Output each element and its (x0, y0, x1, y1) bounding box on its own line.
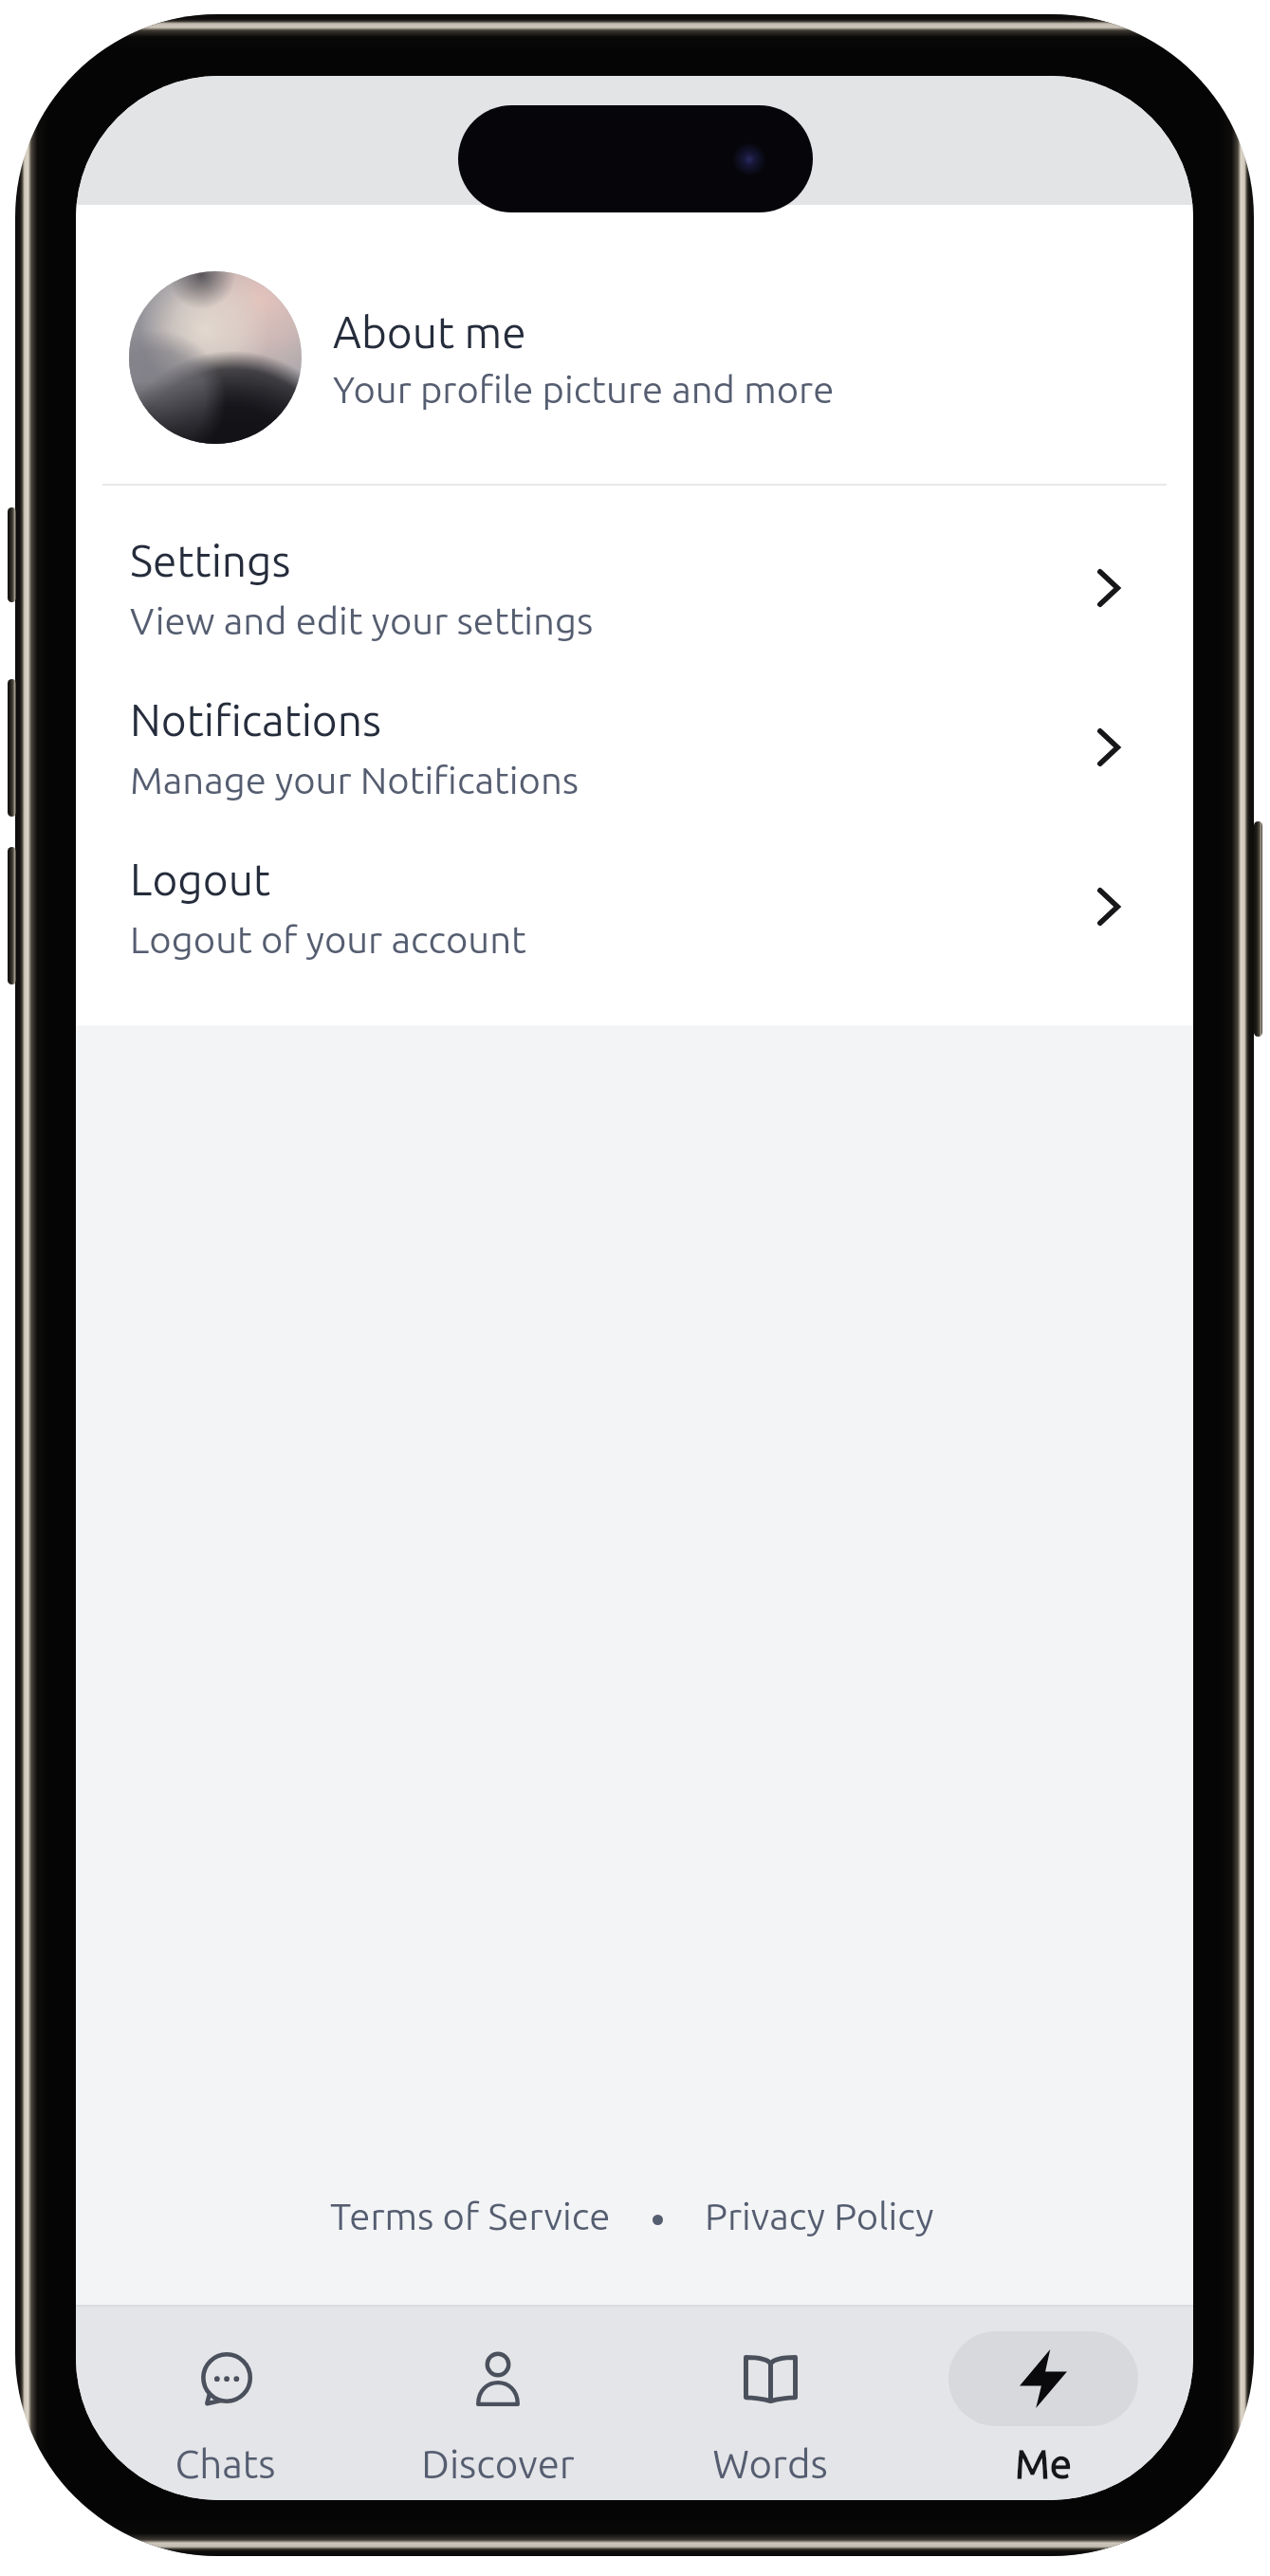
other: Settings (1097, 569, 1120, 607)
button[interactable]: Settings (76, 486, 1193, 645)
button[interactable]: Me (907, 2307, 1180, 2500)
staticText: Words (712, 2441, 828, 2486)
button[interactable]: About me (76, 205, 1193, 484)
staticText: Your profile picture and more (333, 368, 835, 411)
staticText: Discover (421, 2441, 575, 2486)
other: Me (1019, 2349, 1068, 2408)
button[interactable]: Chats (89, 2307, 361, 2500)
other: Discover (476, 2351, 520, 2406)
button[interactable]: Privacy Policy (705, 2195, 934, 2237)
button[interactable]: Words (634, 2307, 907, 2500)
staticText: Manage your Notifications (130, 759, 580, 801)
staticText: Notifications (130, 695, 382, 745)
other: Chats (200, 2352, 251, 2406)
other: Words (744, 2355, 798, 2403)
staticText: Logout of your account (130, 918, 526, 961)
button[interactable]: Notifications (76, 645, 1193, 804)
button[interactable]: Discover (361, 2307, 634, 2500)
staticText: Me (1015, 2441, 1072, 2486)
staticText: Logout (130, 855, 271, 904)
button[interactable]: Terms of Service (330, 2195, 611, 2237)
other: Notifications (1097, 728, 1120, 766)
staticText: About me (333, 307, 526, 357)
staticText: Chats (175, 2441, 276, 2486)
staticText: Settings (130, 536, 291, 585)
staticText: View and edit your settings (130, 599, 594, 642)
button[interactable]: Logout (76, 804, 1193, 964)
other: Logout (1097, 888, 1120, 926)
